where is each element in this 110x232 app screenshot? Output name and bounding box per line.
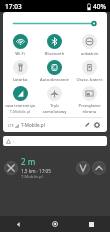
button[interactable]: Expand bbox=[92, 161, 106, 175]
button[interactable]: Recents bbox=[73, 216, 110, 232]
button[interactable]: Autoobracanie bbox=[37, 60, 72, 83]
staticText: Latarka bbox=[4, 77, 36, 83]
button[interactable]: Bluetooth bbox=[37, 34, 72, 57]
button[interactable]: LTE bbox=[8, 122, 45, 128]
button[interactable]: uokaźnie bbox=[72, 34, 107, 57]
button[interactable]: Home bbox=[36, 216, 73, 232]
button[interactable]: Notification bbox=[3, 136, 107, 146]
staticText: uokaźnie bbox=[73, 51, 106, 57]
staticText: Przesyłanie ekranu bbox=[73, 103, 106, 114]
button[interactable]: Wi-Fi bbox=[3, 34, 37, 57]
button[interactable]: owa transmisja bbox=[3, 86, 37, 114]
button[interactable]: Latarka bbox=[3, 60, 37, 83]
staticText: owa transmisja bbox=[4, 103, 36, 109]
staticText: LTE bbox=[8, 123, 14, 128]
button[interactable]: Close bbox=[4, 161, 18, 175]
button[interactable]: Tryb samolotowy bbox=[37, 86, 72, 114]
staticText: · bbox=[13, 138, 15, 145]
staticText: 2 m bbox=[21, 156, 36, 167]
staticText: 1,5 km · 17:05 bbox=[21, 168, 51, 174]
staticText: Oszcz. baterii bbox=[73, 77, 106, 83]
button[interactable]: Close bbox=[0, 151, 110, 185]
button[interactable]: Settings bbox=[92, 120, 102, 130]
staticText: Bluetooth bbox=[38, 51, 71, 57]
button[interactable]: Back bbox=[0, 216, 36, 232]
button[interactable]: Edit tiles bbox=[82, 120, 92, 130]
staticText: Autoobracanie bbox=[38, 77, 71, 83]
staticText: 17:03 bbox=[5, 2, 22, 11]
staticText: Wi-Fi bbox=[4, 51, 36, 57]
staticText: Tryb samolotowy bbox=[38, 103, 71, 114]
staticText: T-Mobile.pl bbox=[3, 109, 37, 114]
staticText: T-Mobile.pl bbox=[21, 122, 45, 128]
button[interactable]: Przesyłanie ekranu bbox=[72, 86, 107, 114]
button[interactable]: Brightness bbox=[12, 19, 98, 28]
staticText: T-Mobile.pl bbox=[21, 174, 43, 180]
button[interactable]: Navigate bbox=[76, 161, 90, 175]
staticText: 40% bbox=[93, 2, 106, 11]
button[interactable]: Oszcz. baterii bbox=[72, 60, 107, 83]
